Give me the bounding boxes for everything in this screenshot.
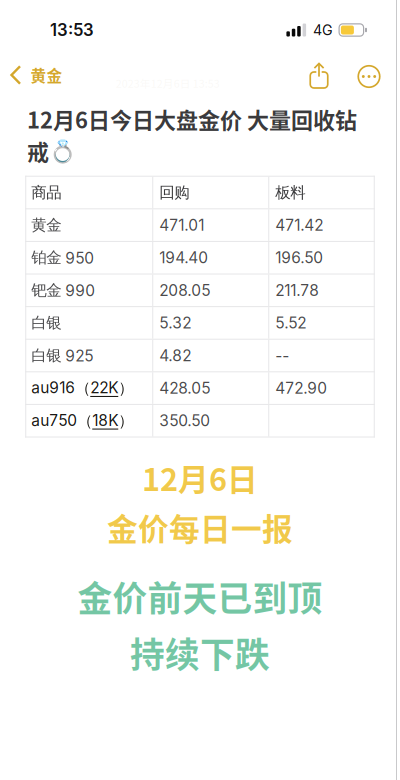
button[interactable]: Share [293, 53, 345, 97]
staticText: 白银 [31, 313, 61, 333]
staticText: 12月6日 [142, 455, 258, 500]
staticText: 13:53 [50, 20, 94, 40]
staticText: 钯金 990 [31, 281, 95, 300]
staticText: 208.05 [159, 281, 210, 300]
staticText: 428.05 [159, 379, 210, 397]
staticText: au750（18K） [31, 411, 133, 430]
staticText: 铂金 950 [31, 248, 94, 267]
button[interactable]: 黄金 [0, 53, 72, 97]
staticText: 471.42 [275, 216, 323, 234]
staticText: 金价每日一报 [107, 505, 293, 549]
staticText: 12月6日今日大盘金价 大量回收钻戒💍 [27, 103, 357, 167]
staticText: 商品 [31, 183, 61, 202]
button[interactable]: More [345, 53, 393, 97]
staticText: 196.50 [275, 248, 323, 267]
staticText: 5.52 [275, 314, 306, 332]
staticText: 黄金 [30, 64, 62, 86]
staticText: 472.90 [275, 379, 327, 397]
staticText: 板料 [275, 183, 305, 202]
staticText: 白银 925 [31, 346, 93, 365]
staticText: 金价前天已到顶 [77, 571, 322, 621]
staticText: 471.01 [159, 216, 204, 234]
staticText: 5.32 [159, 314, 191, 332]
staticText: 4G [313, 21, 333, 39]
staticText: 回购 [159, 183, 189, 202]
staticText: 194.40 [159, 248, 208, 267]
staticText: 4.82 [159, 346, 191, 365]
staticText: 持续下跌 [130, 627, 270, 678]
staticText: 黄金 [31, 215, 61, 235]
staticText: -- [275, 346, 289, 365]
staticText: 350.50 [159, 411, 210, 430]
staticText: au916（22K） [31, 379, 133, 398]
staticText: 211.78 [275, 281, 319, 300]
